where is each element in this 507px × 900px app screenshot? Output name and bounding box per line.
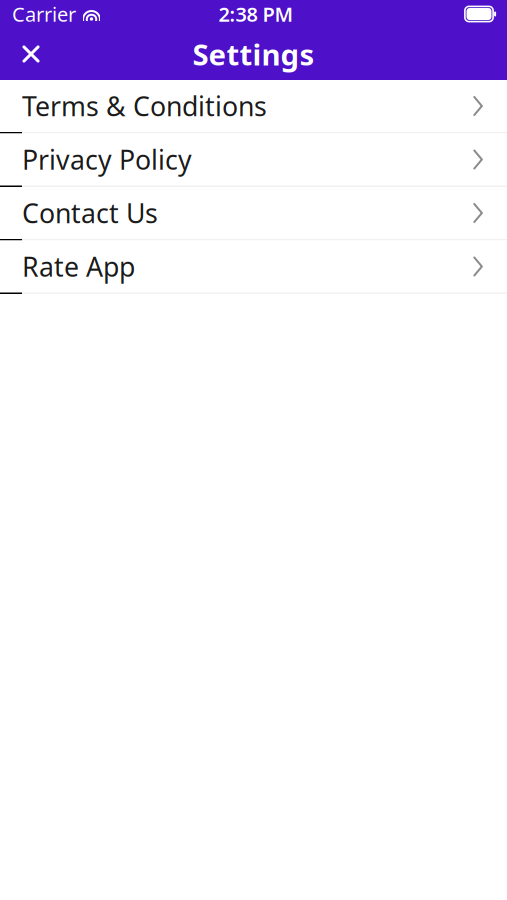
button[interactable]: Privacy Policy	[0, 133, 507, 187]
staticText: Contact Us	[22, 195, 158, 231]
button[interactable]: Rate App	[0, 240, 507, 294]
staticText: Rate App	[22, 249, 135, 284]
staticText: Terms & Conditions	[22, 88, 267, 124]
staticText: Settings	[192, 34, 314, 73]
button[interactable]: Close	[9, 32, 53, 76]
staticText: Privacy Policy	[22, 142, 192, 177]
staticText: Carrier	[12, 1, 76, 27]
staticText: 2:38 PM	[218, 1, 293, 27]
button[interactable]: Terms & Conditions	[0, 80, 507, 133]
button[interactable]: Contact Us	[0, 187, 507, 240]
